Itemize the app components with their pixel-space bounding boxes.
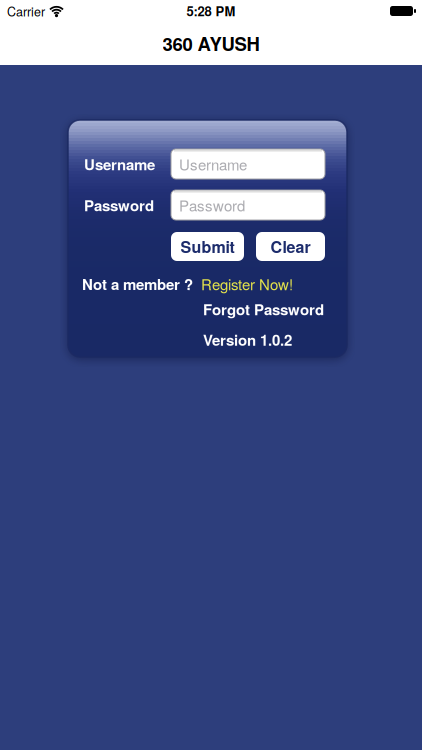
- staticText: Forgot Password: [203, 298, 324, 320]
- button[interactable]: Submit: [171, 232, 244, 261]
- button[interactable]: Register Now!: [201, 273, 293, 294]
- staticText: Password: [84, 194, 154, 216]
- button[interactable]: Clear: [256, 232, 325, 261]
- staticText: Clear: [270, 235, 310, 258]
- staticText: Username: [84, 153, 155, 175]
- staticText: Password: [179, 194, 245, 216]
- button[interactable]: Username: [171, 149, 325, 179]
- button[interactable]: Password: [171, 190, 325, 220]
- staticText: Username: [179, 153, 247, 175]
- staticText: Not a member ?: [82, 273, 193, 294]
- staticText: 360 AYUSH: [162, 30, 259, 57]
- staticText: Submit: [180, 235, 234, 258]
- button[interactable]: Forgot Password: [203, 298, 324, 320]
- staticText: Carrier: [7, 2, 45, 20]
- staticText: Version 1.0.2: [203, 329, 292, 350]
- staticText: Register Now!: [201, 273, 293, 294]
- staticText: 5:28 PM: [186, 2, 235, 20]
